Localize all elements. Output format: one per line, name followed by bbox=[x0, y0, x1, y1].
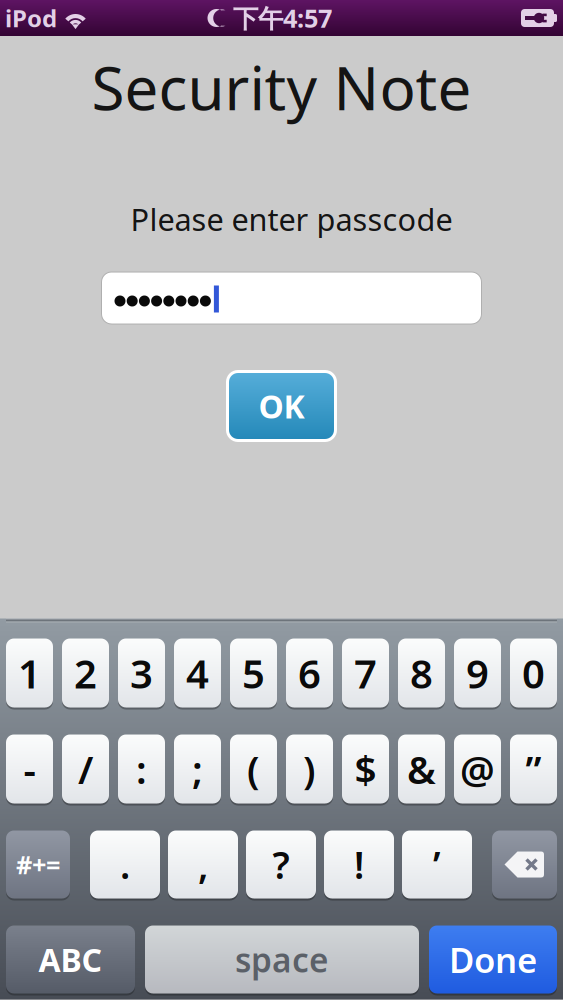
button[interactable]: Done bbox=[429, 925, 557, 993]
button[interactable]: - bbox=[6, 734, 53, 803]
button[interactable]: . bbox=[90, 830, 160, 898]
staticText: ? bbox=[272, 840, 289, 889]
staticText: OK bbox=[258, 385, 304, 427]
button[interactable]: : bbox=[118, 734, 165, 803]
staticText: ABC bbox=[38, 938, 102, 981]
staticText: 0 bbox=[522, 646, 545, 699]
staticText: $ bbox=[354, 743, 376, 795]
button[interactable]: ’ bbox=[402, 830, 472, 898]
button[interactable]: 9 bbox=[454, 638, 501, 707]
button[interactable]: @ bbox=[454, 734, 501, 803]
staticText: iPod bbox=[5, 2, 57, 34]
staticText: ) bbox=[303, 743, 316, 795]
staticText: ( bbox=[247, 743, 260, 795]
staticText: 1 bbox=[18, 646, 41, 699]
button[interactable]: ” bbox=[510, 734, 557, 803]
staticText: 3 bbox=[130, 646, 153, 699]
button[interactable]: space bbox=[145, 925, 419, 993]
button[interactable]: OK bbox=[226, 370, 337, 442]
staticText: : bbox=[136, 743, 147, 795]
staticText: 8 bbox=[410, 646, 433, 699]
button[interactable]: ? bbox=[246, 830, 316, 898]
staticText: @ bbox=[460, 743, 495, 795]
staticText: . bbox=[120, 840, 130, 889]
button[interactable]: ( bbox=[230, 734, 277, 803]
staticText: - bbox=[23, 743, 35, 795]
staticText: 下午4:57 bbox=[233, 1, 332, 35]
button[interactable]: ABC bbox=[6, 925, 135, 993]
button[interactable]: ! bbox=[324, 830, 394, 898]
staticText: 5 bbox=[242, 646, 265, 699]
staticText: 7 bbox=[354, 646, 377, 699]
button[interactable]: ; bbox=[174, 734, 221, 803]
staticText: / bbox=[78, 743, 93, 795]
staticText: 2 bbox=[74, 646, 97, 699]
staticText: Security Note bbox=[91, 47, 471, 127]
staticText: ; bbox=[192, 743, 203, 795]
staticText: , bbox=[198, 840, 208, 889]
button[interactable]: $ bbox=[342, 734, 389, 803]
button[interactable]: 7 bbox=[342, 638, 389, 707]
button[interactable]: 4 bbox=[174, 638, 221, 707]
button[interactable]: 6 bbox=[286, 638, 333, 707]
staticText: #+= bbox=[16, 848, 60, 881]
button[interactable]: 8 bbox=[398, 638, 445, 707]
staticText: ! bbox=[354, 840, 364, 889]
button[interactable]: ) bbox=[286, 734, 333, 803]
button[interactable]: / bbox=[62, 734, 109, 803]
button[interactable]: & bbox=[398, 734, 445, 803]
button[interactable]: 3 bbox=[118, 638, 165, 707]
staticText: 4 bbox=[186, 646, 209, 699]
staticText: Done bbox=[449, 936, 537, 982]
button[interactable]: Delete bbox=[492, 830, 557, 898]
button[interactable]: 2 bbox=[62, 638, 109, 707]
button[interactable]: 1 bbox=[6, 638, 53, 707]
button[interactable]: , bbox=[168, 830, 238, 898]
staticText: & bbox=[407, 743, 436, 795]
staticText: 9 bbox=[466, 646, 489, 699]
button[interactable]: 0 bbox=[510, 638, 557, 707]
staticText: space bbox=[235, 937, 329, 982]
button[interactable]: 5 bbox=[230, 638, 277, 707]
staticText: ” bbox=[525, 743, 541, 795]
button[interactable]: #+= bbox=[6, 830, 70, 898]
staticText: ’ bbox=[433, 840, 441, 889]
staticText: Please enter passcode bbox=[130, 199, 452, 239]
staticText: 6 bbox=[298, 646, 321, 699]
